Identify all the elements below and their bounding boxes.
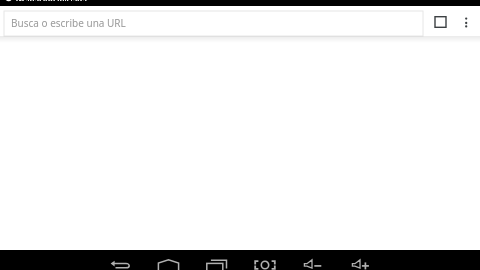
- staticText: Grabación iniciada: [16, 0, 87, 1]
- button[interactable]: More options: [455, 9, 479, 33]
- button[interactable]: Tabs: [429, 9, 453, 33]
- button[interactable]: Volume up: [350, 250, 374, 270]
- button[interactable]: Home: [158, 250, 182, 270]
- button[interactable]: Back: [110, 250, 134, 270]
- button[interactable]: Screenshot: [252, 250, 276, 270]
- button[interactable]: Recents: [205, 250, 229, 270]
- button[interactable]: Busca o escribe una URL: [4, 11, 423, 36]
- button[interactable]: Volume down: [302, 250, 326, 270]
- staticText: Busca o escribe una URL: [11, 16, 126, 30]
